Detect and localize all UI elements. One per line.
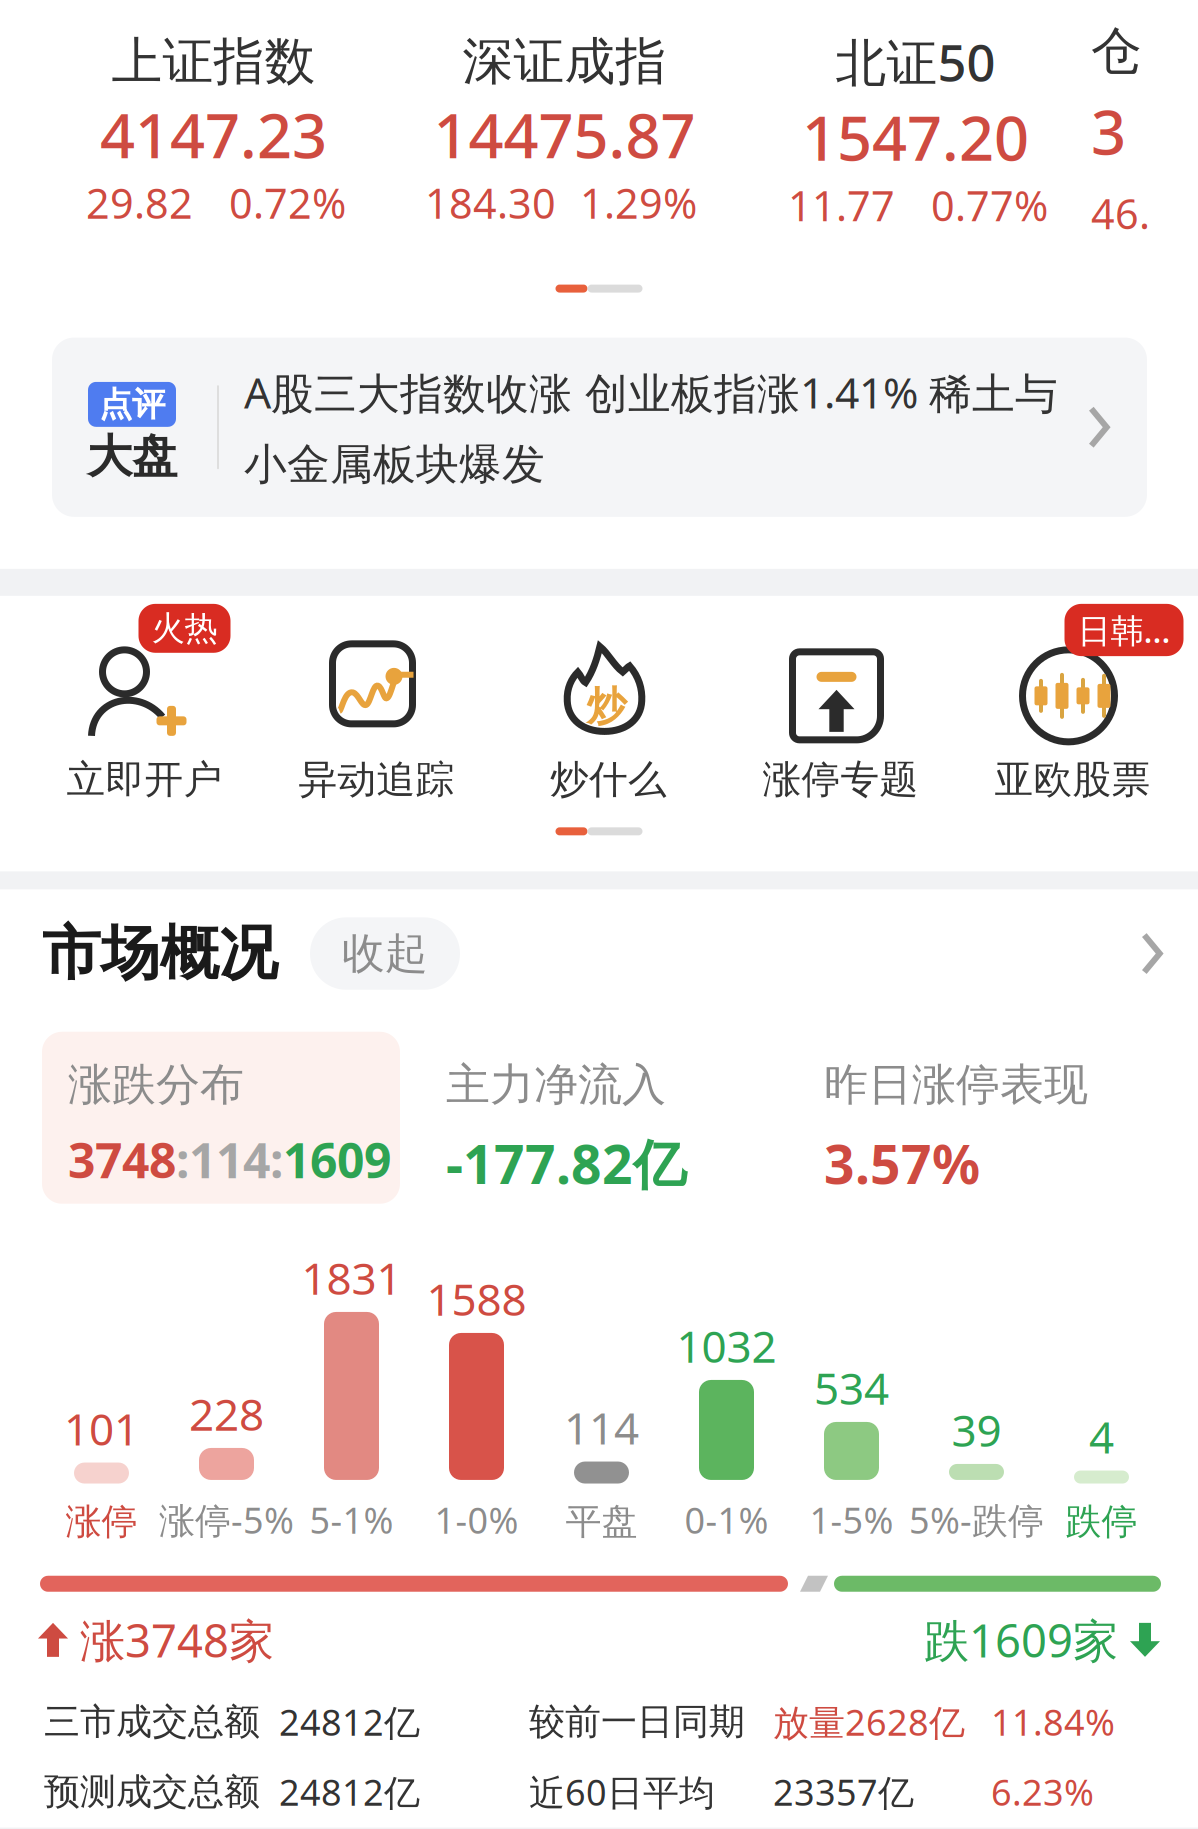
staticText: 涨停-5% — [159, 1496, 294, 1544]
button[interactable]: 涨停专题 — [724, 604, 956, 803]
button[interactable]: 炒 — [492, 604, 724, 803]
staticText: 上证指数 — [111, 30, 315, 93]
staticText: 24812亿 — [279, 1698, 420, 1746]
button[interactable]: 点评 — [52, 338, 1147, 517]
staticText: 3 — [1091, 90, 1126, 172]
staticText: 涨3748家 — [80, 1610, 274, 1670]
button[interactable]: 异动追踪 — [260, 604, 492, 803]
staticText: 昨日涨停表现 — [824, 1058, 1088, 1112]
staticText: 日韩… — [1077, 608, 1170, 652]
staticText: 涨停 — [65, 1499, 137, 1544]
button[interactable]: 深证成指 — [389, 30, 740, 230]
staticText: 1.29% — [580, 175, 697, 230]
staticText: 预测成交总额 — [44, 1770, 260, 1814]
staticText: 跌1609家 — [924, 1610, 1118, 1670]
staticText: 23357亿 — [773, 1768, 914, 1816]
button[interactable]: 收起 — [310, 917, 460, 990]
staticText: 6.23% — [991, 1768, 1094, 1816]
staticText: 29.82 — [86, 175, 193, 230]
staticText: 0.72% — [229, 175, 346, 230]
staticText: A股三大指数收涨 创业板指涨1.41% 稀土与 — [244, 364, 1058, 420]
staticText: 1831 — [301, 1248, 401, 1307]
staticText: 0.77% — [931, 178, 1048, 233]
staticText: 1547.20 — [802, 96, 1029, 178]
staticText: 11.84% — [991, 1698, 1115, 1746]
staticText: 涨跌分布 — [68, 1058, 244, 1112]
staticText: 亚欧股票 — [994, 756, 1150, 803]
staticText: 近60日平均 — [529, 1768, 715, 1816]
staticText: : — [176, 1128, 189, 1191]
staticText: 14475.87 — [433, 94, 695, 175]
staticText: 1032 — [676, 1316, 776, 1375]
staticText: 较前一日同期 — [529, 1700, 745, 1744]
staticText: 小金属板块爆发 — [244, 438, 545, 491]
staticText: 点评 — [99, 384, 165, 425]
staticText: 228 — [189, 1384, 264, 1443]
staticText: 11.77 — [788, 178, 895, 233]
staticText: 三市成交总额 — [44, 1700, 260, 1744]
staticText: 184.30 — [425, 175, 556, 230]
staticText: 深证成指 — [462, 30, 666, 93]
staticText: 1-5% — [809, 1496, 893, 1544]
staticText: 5%-跌停 — [909, 1496, 1044, 1544]
staticText: 放量2628亿 — [773, 1698, 965, 1746]
staticText: 异动追踪 — [298, 756, 454, 803]
staticText: 3748 — [68, 1128, 176, 1191]
staticText: 仓 — [1091, 20, 1142, 82]
button[interactable]: 查看更多 — [1120, 923, 1198, 985]
staticText: 0-1% — [684, 1496, 768, 1544]
staticText: 46. — [1091, 186, 1150, 241]
staticText: -177.82亿 — [446, 1128, 686, 1199]
staticText: 114 — [564, 1398, 639, 1456]
staticText: 4147.23 — [100, 94, 327, 175]
button[interactable]: 火热 — [28, 604, 260, 803]
staticText: 主力净流入 — [446, 1058, 666, 1112]
staticText: 5-1% — [309, 1496, 393, 1544]
staticText: : — [270, 1128, 283, 1191]
staticText: 1-0% — [434, 1496, 518, 1544]
staticText: 大盘 — [87, 429, 177, 484]
staticText: 1609 — [283, 1128, 391, 1191]
staticText: 101 — [64, 1399, 139, 1457]
staticText: 4 — [1089, 1407, 1114, 1465]
staticText: 3.57% — [824, 1128, 980, 1199]
staticText: 炒 — [586, 682, 626, 731]
staticText: 北证50 — [835, 28, 995, 95]
staticText: 涨停专题 — [762, 756, 918, 803]
button[interactable]: 上证指数 — [38, 30, 389, 230]
staticText: 跌停 — [1065, 1499, 1137, 1544]
staticText: 39 — [951, 1400, 1001, 1459]
staticText: 114 — [189, 1128, 270, 1191]
staticText: 1588 — [426, 1269, 526, 1328]
staticText: 24812亿 — [279, 1768, 420, 1816]
button[interactable]: 日韩… — [956, 604, 1188, 803]
staticText: 火热 — [151, 608, 217, 649]
staticText: 平盘 — [565, 1499, 637, 1544]
button[interactable]: 北证50 — [740, 28, 1091, 233]
staticText: 立即开户 — [66, 756, 222, 803]
staticText: 534 — [814, 1358, 889, 1417]
staticText: 收起 — [342, 927, 428, 980]
staticText: 市场概况 — [42, 917, 278, 990]
staticText: 炒什么 — [550, 756, 667, 803]
